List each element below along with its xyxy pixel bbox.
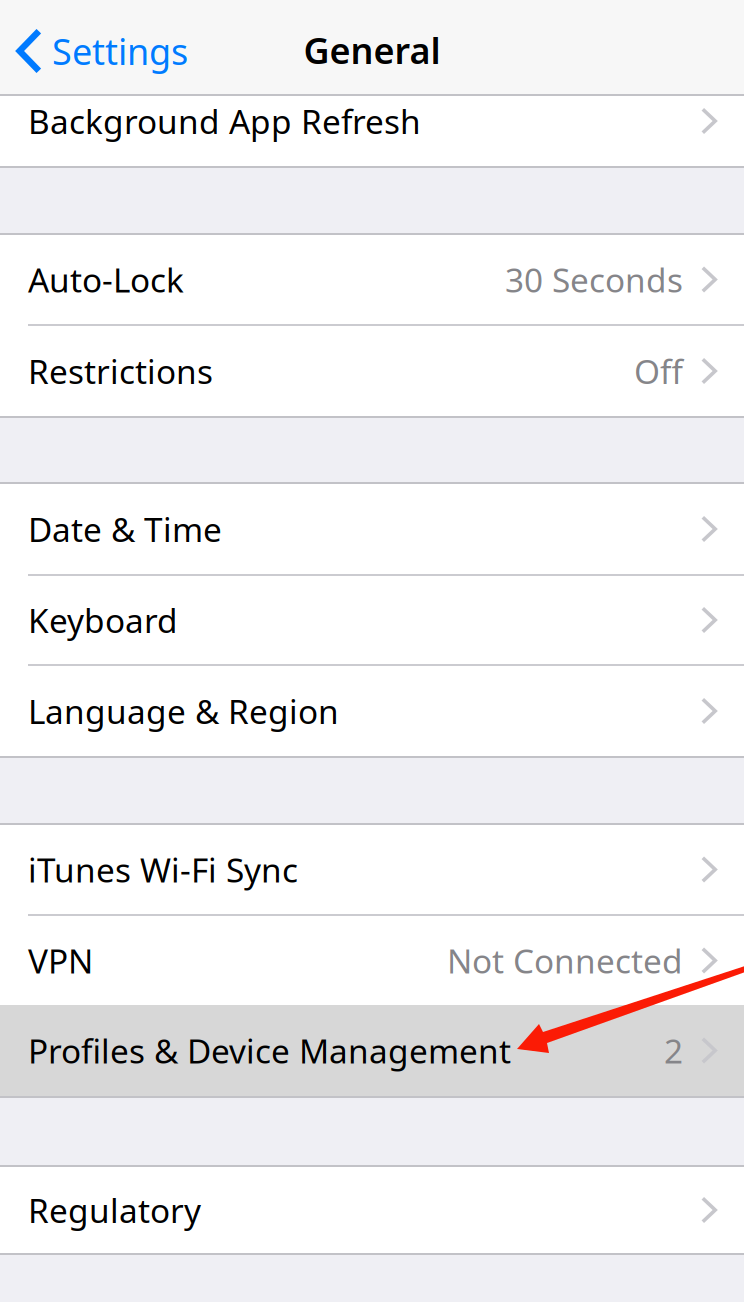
- button[interactable]: Auto-Lock: [0, 235, 744, 324]
- button[interactable]: Language & Region: [0, 666, 744, 756]
- staticText: Settings: [52, 27, 188, 75]
- button[interactable]: Date & Time: [0, 484, 744, 574]
- button[interactable]: Restrictions: [0, 326, 744, 416]
- button[interactable]: Regulatory: [0, 1167, 744, 1253]
- staticText: General: [303, 26, 440, 74]
- staticText: Not Connected: [447, 938, 683, 983]
- button[interactable]: VPN: [0, 916, 744, 1005]
- button[interactable]: iTunes Wi-Fi Sync: [0, 825, 744, 914]
- staticText: Regulatory: [28, 1188, 201, 1232]
- staticText: Background App Refresh: [28, 99, 421, 143]
- button[interactable]: Settings: [0, 4, 198, 98]
- staticText: Keyboard: [28, 598, 178, 642]
- staticText: Profiles & Device Management: [28, 1028, 511, 1073]
- staticText: 2: [664, 1028, 683, 1073]
- staticText: 30 Seconds: [505, 257, 683, 302]
- staticText: Auto-Lock: [28, 257, 184, 302]
- button[interactable]: Profiles & Device Management: [0, 1005, 744, 1096]
- staticText: iTunes Wi-Fi Sync: [28, 847, 298, 892]
- button[interactable]: Background App Refresh: [0, 96, 744, 166]
- staticText: Restrictions: [28, 349, 213, 393]
- button[interactable]: Keyboard: [0, 576, 744, 664]
- staticText: VPN: [28, 938, 93, 983]
- staticText: Language & Region: [28, 689, 339, 733]
- staticText: Date & Time: [28, 507, 222, 551]
- staticText: Off: [634, 349, 683, 393]
